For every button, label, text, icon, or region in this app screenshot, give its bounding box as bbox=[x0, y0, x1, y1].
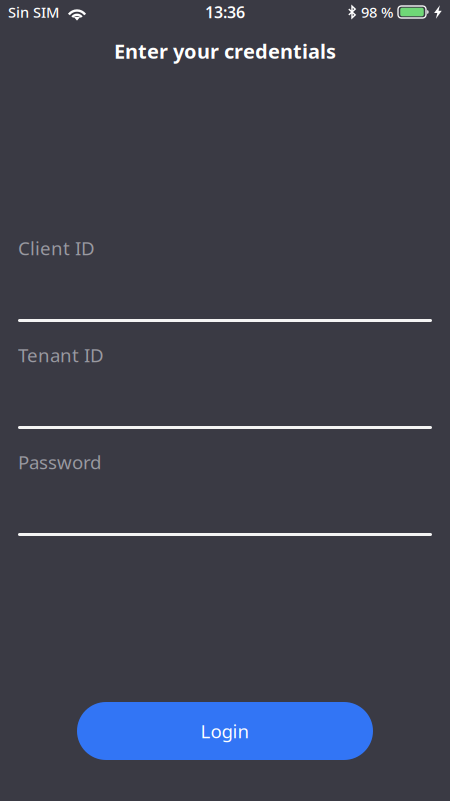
button[interactable]: Login bbox=[77, 702, 373, 760]
staticText: Tenant ID bbox=[18, 343, 104, 367]
staticText: Login bbox=[200, 719, 249, 743]
staticText: 13:36 bbox=[205, 1, 245, 23]
staticText: Enter your credentials bbox=[114, 38, 336, 64]
staticText: Client ID bbox=[18, 236, 95, 260]
button[interactable]: Tenant ID bbox=[18, 344, 432, 451]
button[interactable]: Client ID bbox=[18, 237, 432, 344]
staticText: Sin SIM bbox=[8, 2, 59, 22]
staticText: Password bbox=[18, 450, 101, 474]
button[interactable]: Password bbox=[18, 451, 432, 558]
staticText: 98 % bbox=[361, 2, 393, 22]
